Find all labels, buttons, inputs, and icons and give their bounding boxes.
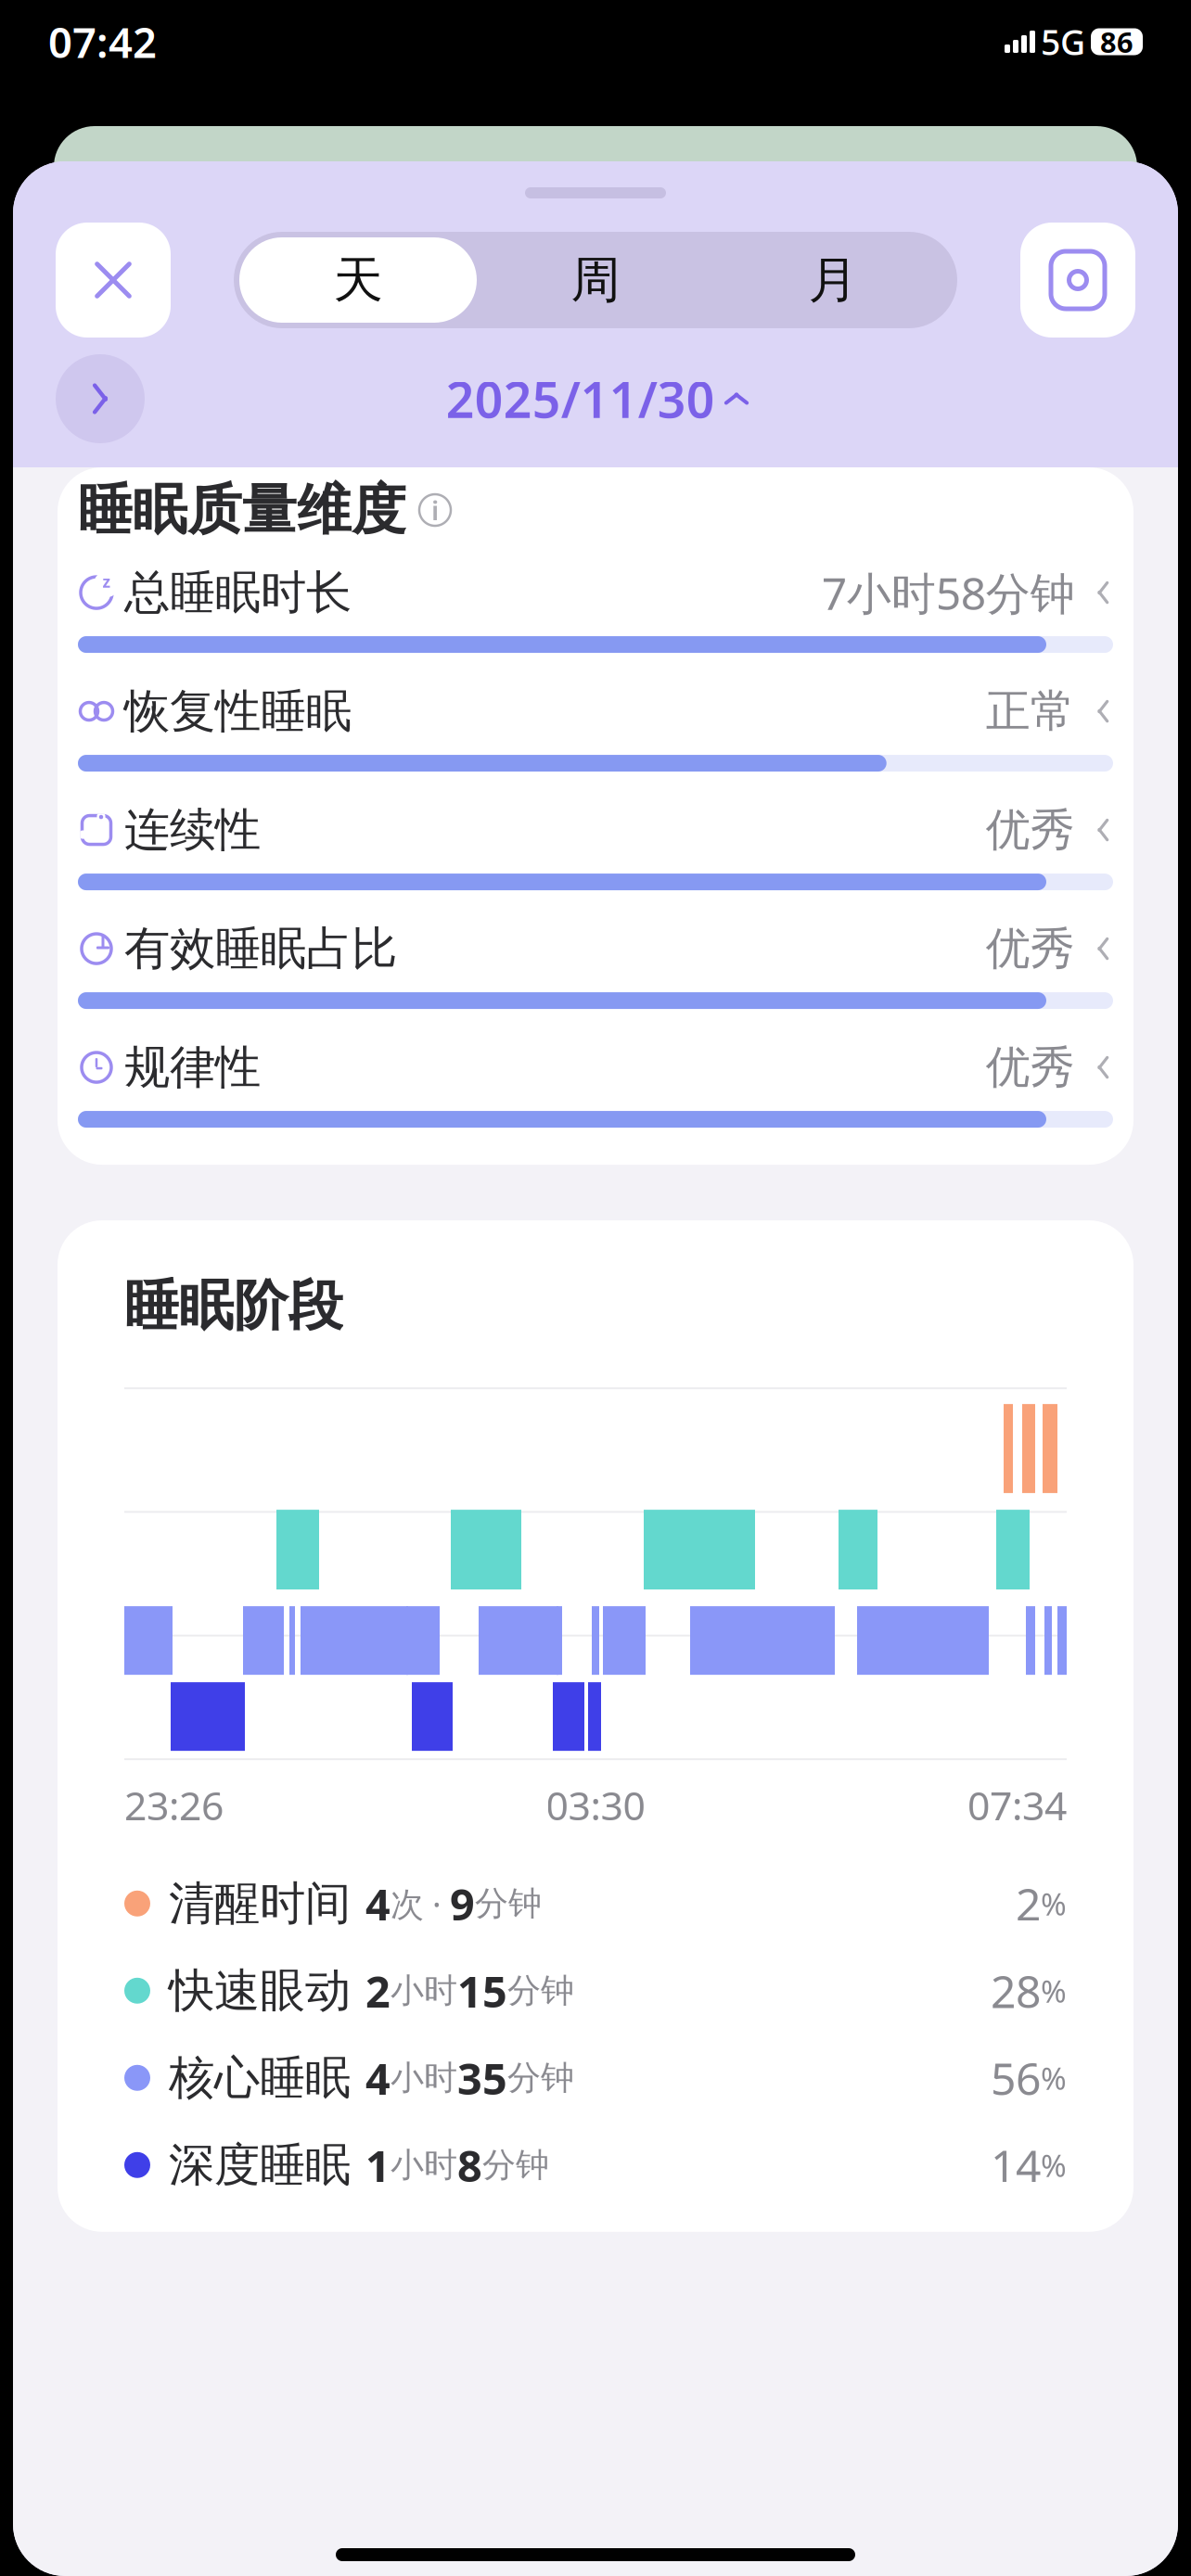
- staticText: 5G: [1041, 19, 1085, 65]
- staticText: 周: [571, 250, 620, 310]
- staticText: 14: [991, 2135, 1041, 2195]
- staticText: 天: [333, 250, 383, 310]
- staticText: 总睡眠时长: [124, 565, 352, 621]
- button[interactable]: 关闭: [56, 223, 171, 338]
- staticText: 03:30: [546, 1779, 645, 1831]
- staticText: %: [1041, 1883, 1067, 1924]
- staticText: i: [431, 492, 439, 528]
- button[interactable]: 规律性: [58, 1041, 1133, 1128]
- button[interactable]: 周: [477, 237, 714, 323]
- staticText: 有效睡眠占比: [124, 921, 397, 977]
- staticText: 小时: [391, 1970, 457, 2011]
- staticText: 4: [365, 2049, 391, 2107]
- staticText: 深度睡眠: [169, 2137, 351, 2193]
- staticText: 次 ·: [391, 1881, 450, 1926]
- staticText: 23:26: [124, 1779, 224, 1831]
- staticText: 4: [365, 1875, 391, 1932]
- button[interactable]: 连续性: [58, 803, 1133, 890]
- staticText: 07:42: [48, 14, 157, 70]
- staticText: 分钟: [475, 1883, 542, 1924]
- staticText: 优秀: [986, 1040, 1075, 1095]
- staticText: 9: [450, 1875, 475, 1932]
- staticText: 小时: [391, 2057, 457, 2098]
- staticText: 07:34: [967, 1779, 1067, 1831]
- staticText: 清醒时间: [169, 1875, 351, 1932]
- staticText: 规律性: [124, 1039, 261, 1095]
- staticText: 86: [1100, 23, 1133, 61]
- staticText: 1: [365, 2136, 391, 2194]
- button[interactable]: z: [58, 566, 1133, 653]
- staticText: %: [1041, 2144, 1067, 2186]
- staticText: 56: [991, 2048, 1041, 2107]
- staticText: 优秀: [986, 803, 1075, 857]
- button[interactable]: 前一天: [56, 354, 145, 443]
- staticText: 睡眠质量维度: [78, 477, 406, 543]
- staticText: 优秀: [986, 921, 1075, 976]
- staticText: 连续性: [124, 802, 261, 858]
- staticText: 2: [365, 1962, 391, 2019]
- staticText: 2025/11/30: [446, 366, 715, 432]
- button[interactable]: 有效睡眠占比: [58, 922, 1133, 1009]
- button[interactable]: 恢复性睡眠: [58, 684, 1133, 772]
- staticText: 分钟: [482, 2145, 549, 2186]
- staticText: 快速眼动: [169, 1963, 351, 2019]
- staticText: 35: [457, 2049, 507, 2107]
- staticText: 睡眠阶段: [124, 1272, 343, 1339]
- staticText: 月: [808, 250, 858, 310]
- button[interactable]: 天: [239, 237, 477, 323]
- staticText: z: [102, 571, 111, 592]
- staticText: 28: [991, 1961, 1041, 2020]
- staticText: 核心睡眠: [169, 2050, 351, 2106]
- staticText: 恢复性睡眠: [124, 683, 352, 739]
- staticText: 小时: [391, 2145, 457, 2186]
- button[interactable]: 2025/11/30: [446, 366, 745, 432]
- staticText: 正常: [986, 684, 1075, 739]
- staticText: 2: [1016, 1874, 1041, 1933]
- staticText: 7小时58分钟: [821, 563, 1075, 622]
- staticText: %: [1041, 2057, 1067, 2098]
- button[interactable]: 月: [714, 237, 952, 323]
- staticText: 15: [457, 1962, 507, 2019]
- staticText: 分钟: [507, 1970, 574, 2011]
- staticText: 8: [457, 2136, 482, 2194]
- staticText: %: [1041, 1970, 1067, 2011]
- button[interactable]: 设置: [1020, 223, 1135, 338]
- staticText: 分钟: [507, 2057, 574, 2098]
